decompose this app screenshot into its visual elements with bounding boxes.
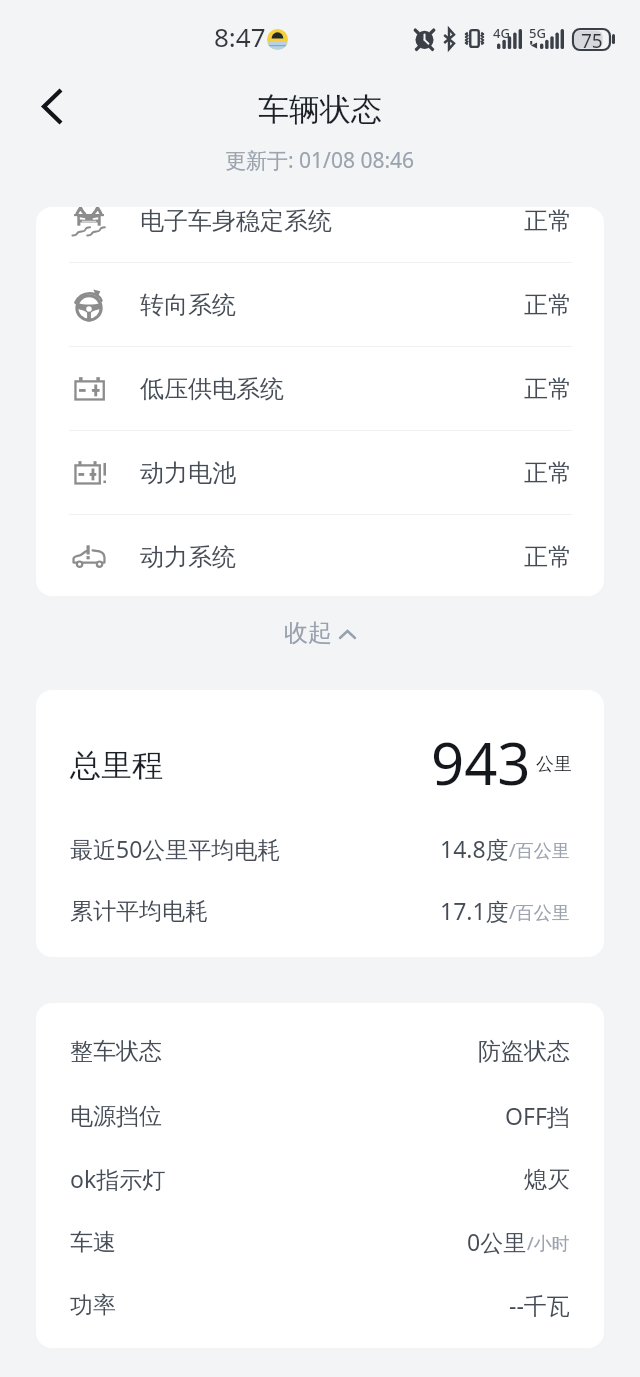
staticText: 累计平均电耗 [70,897,208,926]
staticText: /百公里 [509,900,570,925]
staticText: 收起 [284,618,332,648]
staticText: --千瓦 [509,1289,570,1320]
button[interactable]: 电子车身稳定系统 [36,207,604,262]
staticText: 动力系统 [140,542,236,572]
staticText: 功率 [70,1291,116,1320]
staticText: OFF挡 [505,1100,570,1131]
staticText: 防盗状态 [478,1037,570,1066]
staticText: 4G [493,24,510,42]
button[interactable]: 转向系统 [36,263,604,346]
staticText: 943 [431,723,531,802]
staticText: /小时 [527,1231,570,1256]
staticText: 75 [581,28,603,49]
staticText: 公里 [536,753,572,776]
button[interactable]: 收起 [254,602,386,664]
button[interactable]: 动力系统 [36,515,604,596]
staticText: 更新于: 01/08 08:46 [225,146,415,175]
staticText: 8:47 [214,19,266,54]
staticText: ok指示灯 [70,1163,166,1194]
staticText: 车辆状态 [258,90,382,129]
staticText: 最近50公里平均电耗 [70,833,281,864]
staticText: 5G [529,24,546,42]
staticText: 0公里 [467,1226,527,1257]
staticText: 熄灭 [524,1165,570,1194]
staticText: 整车状态 [70,1037,162,1066]
staticText: 总里程 [70,746,163,785]
staticText: /百公里 [509,838,570,863]
staticText: 正常 [524,374,572,404]
staticText: 电子车身稳定系统 [140,207,332,236]
staticText: 正常 [524,458,572,488]
button[interactable]: 动力电池 [36,431,604,514]
staticText: 正常 [524,207,572,236]
staticText: 车速 [70,1228,116,1257]
staticText: 正常 [524,542,572,572]
staticText: 动力电池 [140,458,236,488]
staticText: 低压供电系统 [140,374,284,404]
staticText: 14.8度 [440,833,509,864]
button[interactable]: Back [26,80,78,132]
staticText: 17.1度 [440,895,509,926]
staticText: 转向系统 [140,290,236,320]
staticText: 正常 [524,290,572,320]
button[interactable]: 低压供电系统 [36,347,604,430]
staticText: 电源挡位 [70,1102,162,1131]
